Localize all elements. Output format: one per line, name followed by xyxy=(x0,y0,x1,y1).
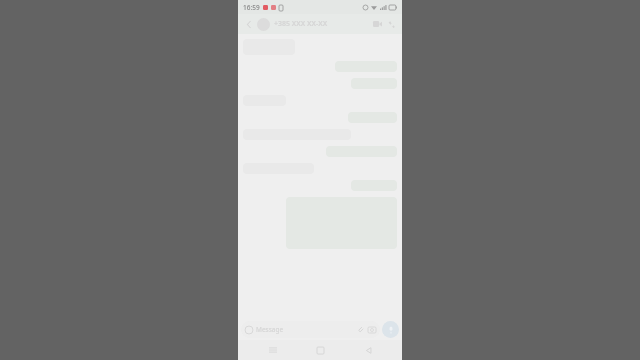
button[interactable]: +385 XXX XX-XX xyxy=(274,19,370,29)
staticText: 16:59 xyxy=(243,3,260,12)
other: Emoji xyxy=(245,326,253,334)
button[interactable]: Send xyxy=(382,321,399,338)
staticText: +385 XXX XX-XX xyxy=(274,19,328,29)
button[interactable]: Video call xyxy=(370,17,384,31)
button[interactable]: Emoji xyxy=(241,321,380,338)
other: Attach xyxy=(357,326,364,333)
button[interactable]: Call xyxy=(384,17,398,31)
button[interactable]: Back xyxy=(242,17,256,31)
button[interactable]: Home xyxy=(307,340,333,360)
other: Camera xyxy=(368,327,376,333)
button[interactable]: Contact avatar xyxy=(257,18,270,31)
staticText: Message xyxy=(256,325,357,334)
